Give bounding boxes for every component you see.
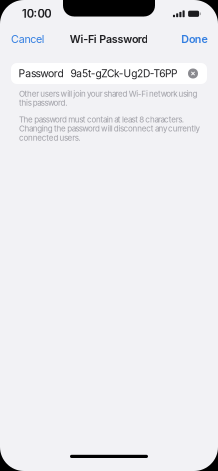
staticText: 9a5t-gZCk-Ug2D-T6PP	[70, 67, 177, 80]
staticText: The password must contain at least 8 cha…	[19, 115, 199, 143]
staticText: 10:00	[22, 7, 51, 21]
staticText: Password	[18, 67, 63, 80]
staticText: Other users will join your shared Wi-Fi …	[19, 89, 198, 108]
staticText: Wi-Fi Password	[70, 32, 148, 45]
button[interactable]: Done	[171, 27, 218, 50]
button[interactable]: Cancel	[0, 27, 56, 50]
staticText: Cancel	[11, 32, 45, 45]
staticText: Done	[181, 32, 207, 45]
button[interactable]: Clear password	[183, 63, 198, 84]
